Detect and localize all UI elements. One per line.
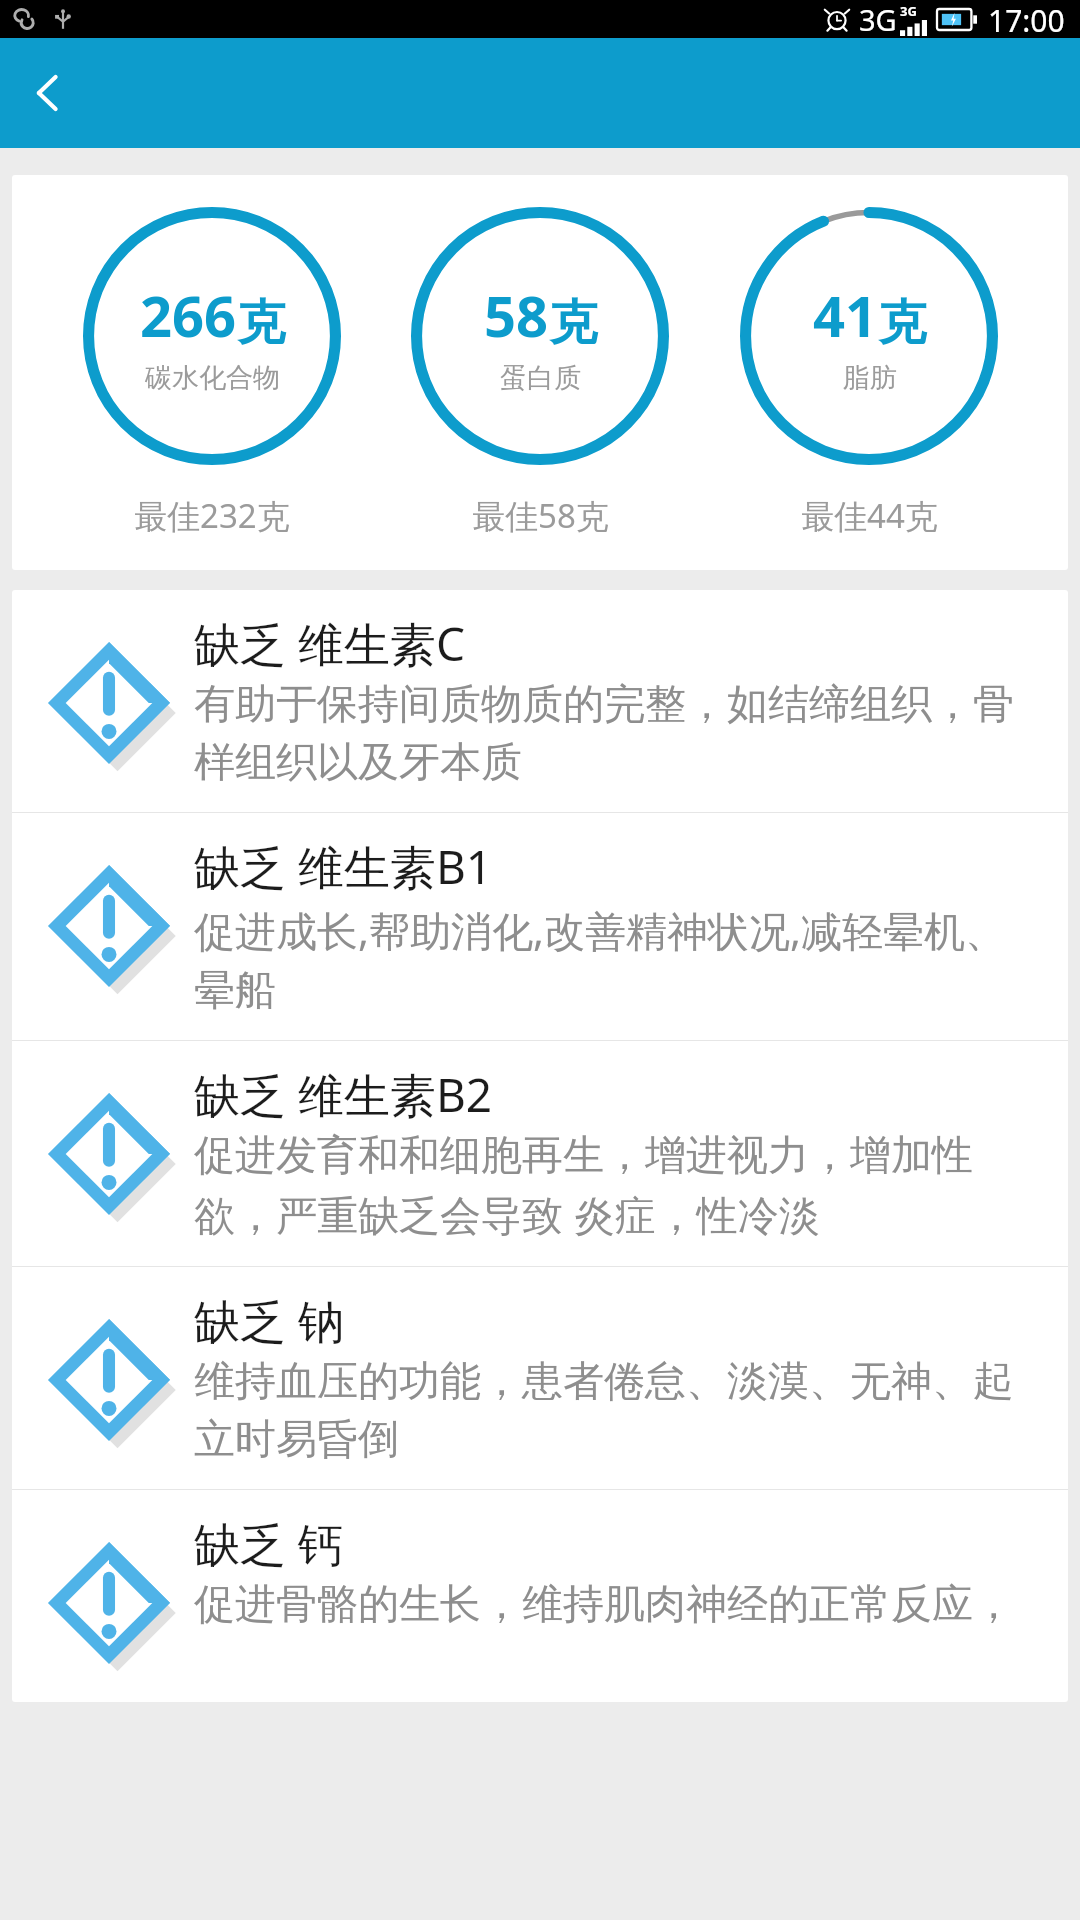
staticText: 碳水化合物 bbox=[145, 361, 280, 395]
button[interactable]: 缺乏 维生素C bbox=[12, 590, 1068, 812]
staticText: 17:00 bbox=[988, 0, 1065, 38]
staticText: 缺乏 钙 bbox=[194, 1512, 344, 1575]
staticText: 缺乏 维生素B1 bbox=[194, 835, 493, 898]
staticText: 缺乏 钠 bbox=[194, 1289, 344, 1352]
staticText: 促进成长,帮助消化,改善精神状况,减轻晕机、晕船 bbox=[194, 902, 1046, 1016]
staticText: 最佳58克 bbox=[472, 493, 609, 538]
staticText: 58 bbox=[484, 277, 549, 353]
staticText: 3G bbox=[900, 2, 917, 20]
staticText: 缺乏 维生素B2 bbox=[194, 1063, 493, 1126]
staticText: 最佳44克 bbox=[801, 493, 938, 538]
staticText: 266 bbox=[140, 277, 237, 353]
button[interactable]: 缺乏 维生素B1 bbox=[12, 813, 1068, 1040]
button[interactable]: 缺乏 钙 bbox=[12, 1490, 1068, 1702]
button[interactable]: 缺乏 维生素B2 bbox=[12, 1041, 1068, 1266]
staticText: 脂肪 bbox=[843, 361, 897, 395]
staticText: 缺乏 维生素C bbox=[194, 612, 466, 675]
staticText: 蛋白质 bbox=[500, 361, 581, 395]
button[interactable]: 266 bbox=[12, 175, 1068, 570]
staticText: 维持血压的功能，患者倦怠、淡漠、无神、起立时易昏倒 bbox=[194, 1356, 1046, 1465]
staticText: 促进骨骼的生长，维持肌肉神经的正常反应， bbox=[194, 1579, 1014, 1631]
button[interactable]: Back bbox=[10, 55, 86, 131]
staticText: 最佳232克 bbox=[134, 493, 290, 538]
button[interactable]: 缺乏 钠 bbox=[12, 1267, 1068, 1489]
staticText: 克 bbox=[549, 293, 597, 353]
staticText: 有助于保持间质物质的完整，如结缔组织，骨样组织以及牙本质 bbox=[194, 679, 1046, 788]
staticText: 41 bbox=[813, 277, 878, 353]
staticText: 克 bbox=[237, 293, 285, 353]
staticText: 3G bbox=[859, 0, 897, 38]
staticText: 促进发育和和细胞再生，增进视力，增加性欲，严重缺乏会导致 炎症，性冷淡 bbox=[194, 1130, 1046, 1242]
staticText: 克 bbox=[878, 293, 926, 353]
